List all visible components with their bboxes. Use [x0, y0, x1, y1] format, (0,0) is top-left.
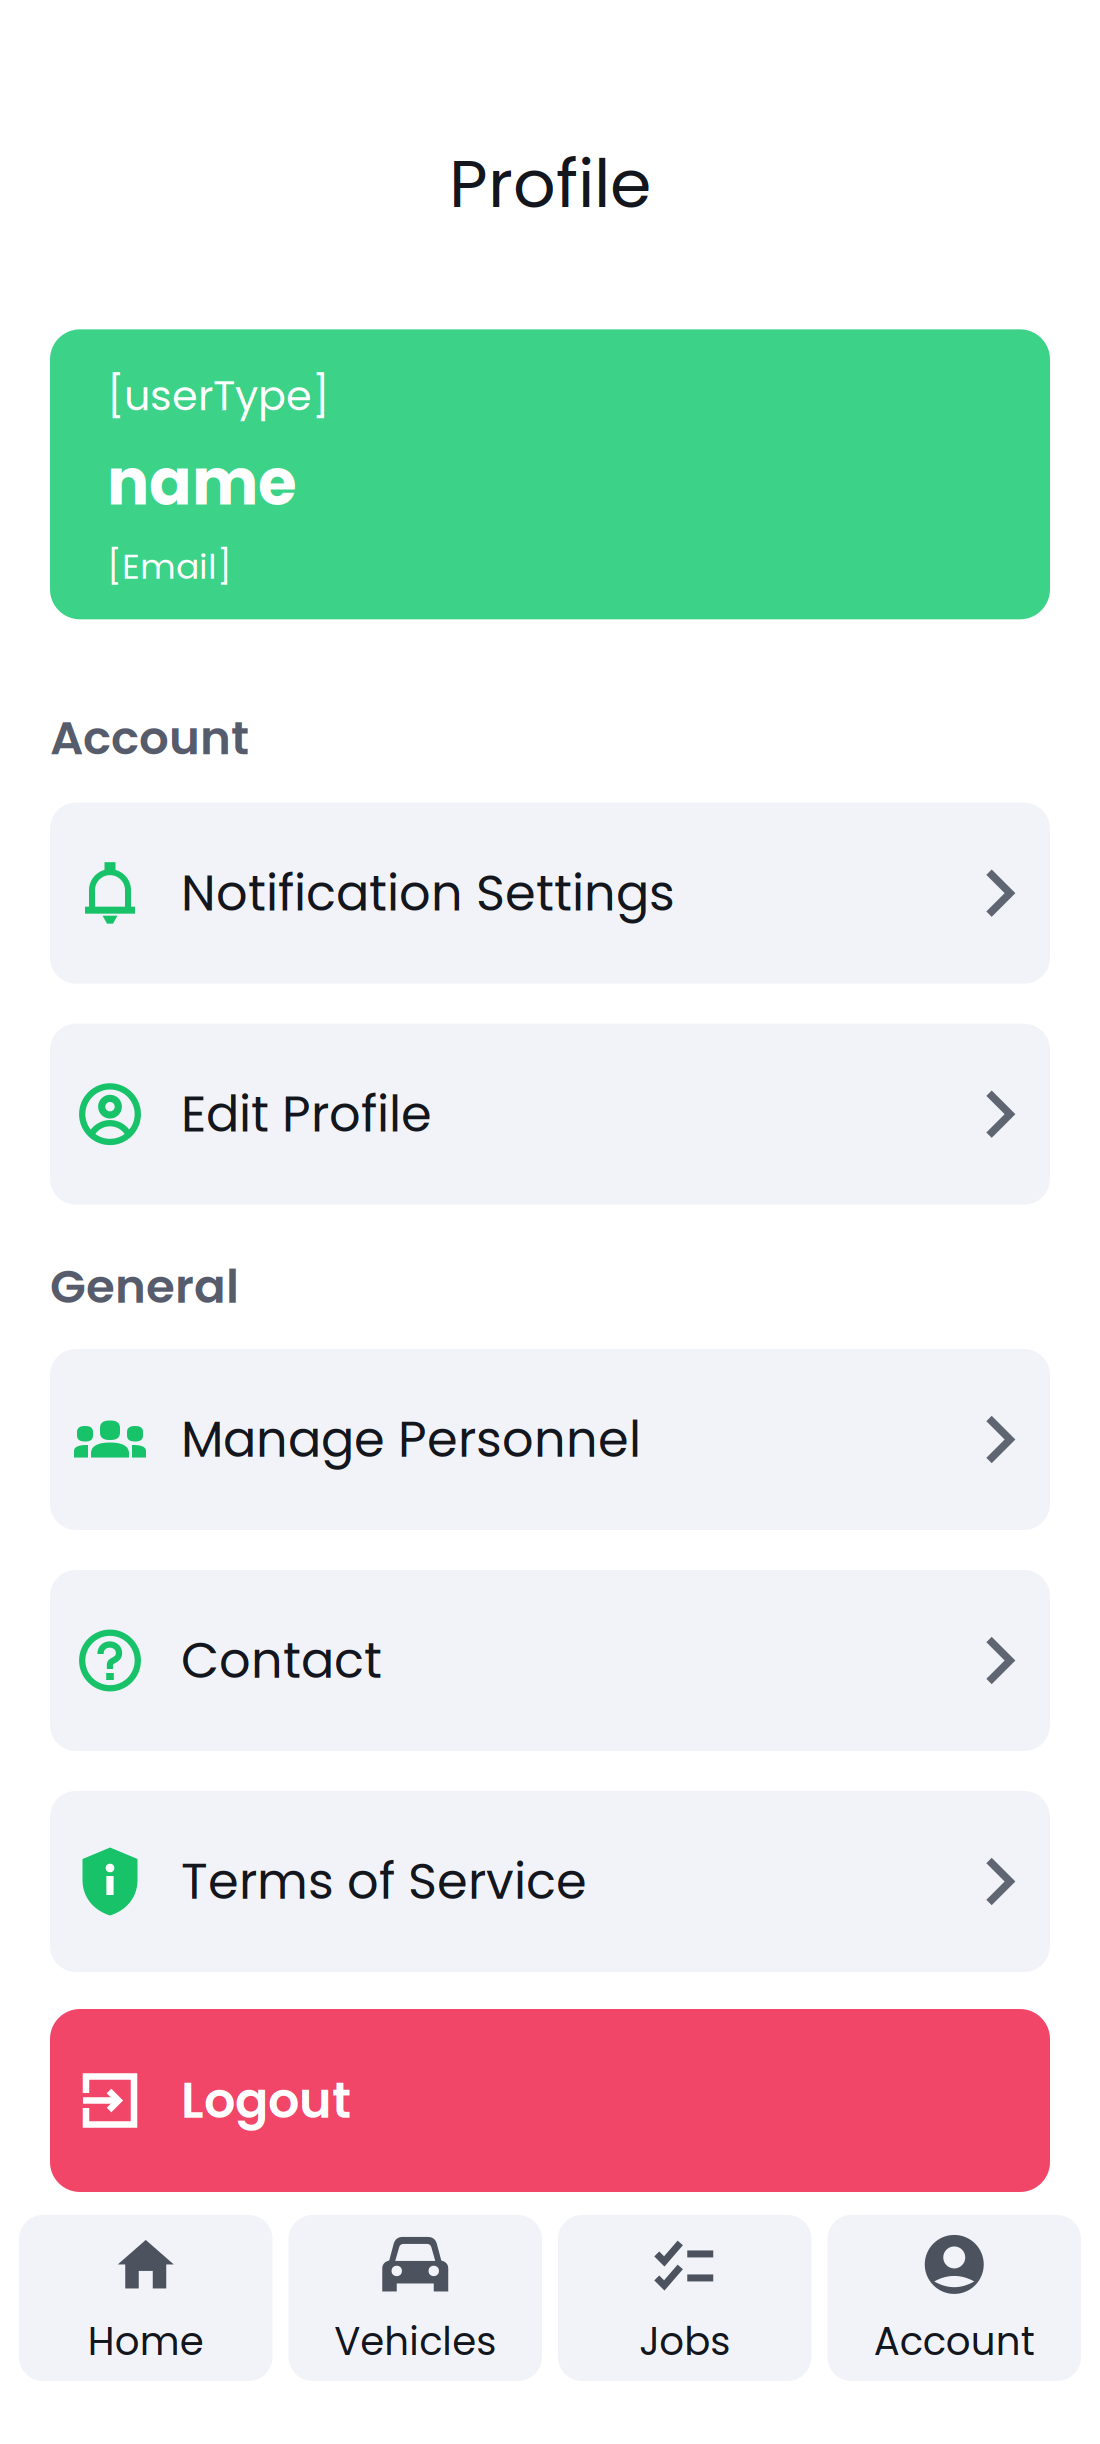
staticText: [userType]: [107, 367, 329, 425]
staticText: Profile: [449, 137, 651, 230]
staticText: name: [107, 439, 297, 526]
staticText: General: [50, 1254, 239, 1319]
staticText: Account: [50, 705, 249, 771]
staticText: Notification Settings: [181, 859, 675, 928]
button[interactable]: Manage Personnel: [50, 1349, 1050, 1530]
button[interactable]: Home: [19, 2215, 272, 2381]
staticText: Vehicles: [334, 2314, 496, 2368]
button[interactable]: Notification Settings: [50, 803, 1050, 984]
staticText: Terms of Service: [181, 1847, 587, 1916]
button[interactable]: Jobs: [558, 2215, 811, 2381]
button[interactable]: Logout: [50, 2009, 1050, 2192]
button[interactable]: Edit Profile: [50, 1024, 1050, 1205]
button[interactable]: Vehicles: [288, 2215, 542, 2381]
staticText: Edit Profile: [181, 1080, 432, 1149]
staticText: Contact: [181, 1626, 382, 1695]
staticText: Home: [88, 2314, 204, 2368]
staticText: Manage Personnel: [181, 1405, 641, 1474]
button[interactable]: Contact: [50, 1570, 1050, 1751]
button[interactable]: Terms of Service: [50, 1791, 1050, 1972]
staticText: Jobs: [639, 2314, 730, 2368]
staticText: Logout: [181, 2066, 351, 2135]
staticText: [Email]: [107, 542, 232, 591]
staticText: Account: [874, 2314, 1035, 2368]
button[interactable]: Account: [827, 2215, 1081, 2381]
